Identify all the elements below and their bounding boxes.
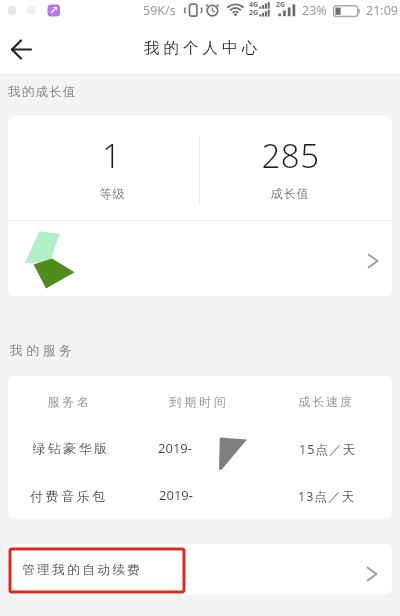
staticText: 59K/s [143, 2, 176, 19]
staticText: 23% [302, 2, 327, 19]
staticText: 服务名 [47, 394, 92, 409]
staticText: 4G [249, 0, 259, 10]
staticText: 2G [276, 0, 286, 10]
button[interactable] [8, 221, 392, 296]
staticText: 付费音乐包 [30, 488, 108, 504]
staticText: 285 [261, 133, 320, 178]
staticText: 成长速度 [297, 394, 353, 409]
staticText: 2019- [158, 439, 192, 457]
staticText: 我的成长值 [8, 84, 77, 100]
staticText: 成长值 [270, 186, 309, 201]
staticText: 我的服务 [8, 342, 74, 358]
staticText: 绿钻豪华版 [32, 440, 110, 456]
staticText: 我的个人中心 [142, 38, 259, 58]
button[interactable] [8, 544, 392, 595]
staticText: 2019- [159, 486, 193, 504]
button[interactable] [4, 35, 40, 65]
staticText: 1 [102, 133, 121, 178]
staticText: 等级 [99, 186, 125, 201]
staticText: 21:09 [366, 2, 398, 19]
staticText: 到期时间 [169, 394, 229, 409]
staticText: 2G [249, 8, 259, 18]
staticText: 13点／天 [298, 488, 355, 505]
staticText: 15点／天 [299, 441, 356, 458]
staticText: 管理我的自动续费 [21, 562, 141, 578]
